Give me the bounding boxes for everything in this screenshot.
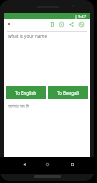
button[interactable]: To Bengali (48, 86, 88, 99)
staticText: To English (15, 90, 37, 96)
staticText: 9:47 (78, 14, 86, 19)
button[interactable]: Recent apps (66, 157, 78, 171)
button[interactable]: Translate (77, 19, 86, 30)
staticText: To Bengali (57, 90, 79, 96)
button[interactable]: Clear (57, 19, 66, 30)
button[interactable]: To English (6, 86, 46, 99)
staticText: আপনার নাম কি (8, 103, 30, 109)
button[interactable]: Back (18, 157, 30, 171)
button[interactable]: Copy (48, 19, 57, 30)
staticText: what is your name (8, 33, 48, 39)
button[interactable]: Share (67, 19, 76, 30)
button[interactable]: Home (41, 157, 53, 171)
